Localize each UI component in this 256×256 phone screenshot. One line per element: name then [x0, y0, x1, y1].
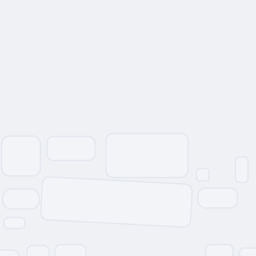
button[interactable]: Card 7: [4, 217, 25, 228]
button[interactable]: Card 4: [196, 168, 209, 181]
button[interactable]: Card 14: [239, 248, 256, 256]
button[interactable]: Card 2: [47, 136, 95, 160]
button[interactable]: Card 6: [3, 189, 39, 209]
button[interactable]: Card 5: [235, 157, 248, 182]
button[interactable]: Card 13: [205, 244, 233, 256]
button[interactable]: Card 10: [0, 250, 19, 256]
button[interactable]: Card 12: [55, 244, 86, 256]
button[interactable]: Card 9: [198, 188, 237, 208]
button[interactable]: Card 11: [27, 245, 49, 256]
